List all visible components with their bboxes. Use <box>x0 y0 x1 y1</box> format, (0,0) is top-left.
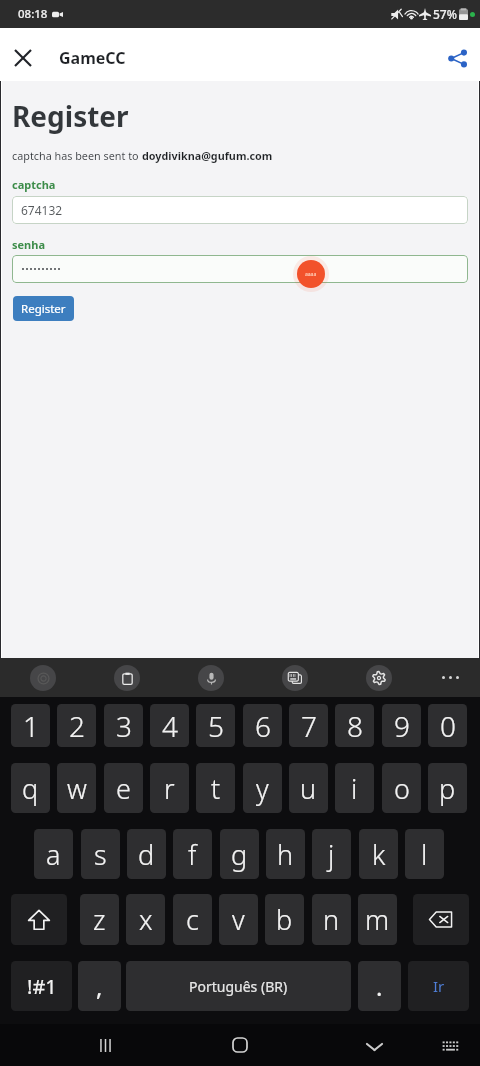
button[interactable]: c <box>173 894 212 945</box>
button[interactable]: d <box>127 829 166 879</box>
button[interactable]: 8 <box>335 704 374 747</box>
button[interactable]: l <box>405 829 444 879</box>
button[interactable]: Hide keyboard <box>353 1024 395 1066</box>
staticText: u <box>300 770 317 807</box>
staticText: 674132 <box>21 202 63 218</box>
staticText: m <box>365 901 390 938</box>
button[interactable]: t <box>196 763 235 813</box>
staticText: senha <box>12 237 45 252</box>
button[interactable]: a <box>34 829 73 879</box>
button[interactable]: Voice input <box>190 658 232 697</box>
button[interactable]: i <box>335 763 374 813</box>
button[interactable]: p <box>428 763 467 813</box>
staticText: 6 <box>255 707 271 745</box>
staticText: 1 <box>23 707 39 745</box>
staticText: h <box>277 836 294 873</box>
staticText: . <box>376 970 383 1003</box>
button[interactable]: z <box>80 894 119 945</box>
button[interactable]: j <box>312 829 351 879</box>
button[interactable]: h <box>266 829 305 879</box>
staticText: e <box>116 770 131 807</box>
staticText: aaaa <box>305 271 317 278</box>
button[interactable]: !#1 <box>11 961 72 1011</box>
button[interactable]: 674132 <box>12 196 468 224</box>
staticText: Ir <box>433 976 445 996</box>
button[interactable]: 7 <box>289 704 328 747</box>
staticText: k <box>372 836 386 873</box>
staticText: p <box>439 770 456 807</box>
staticText: y <box>256 770 269 807</box>
button[interactable]: 1 <box>11 704 50 747</box>
button[interactable]: m <box>358 894 397 945</box>
button[interactable]: r <box>150 763 189 813</box>
button[interactable]: Português (BR) <box>126 961 351 1011</box>
staticText: t <box>211 770 221 807</box>
staticText: Register <box>21 301 66 317</box>
button[interactable]: 5 <box>196 704 235 747</box>
button[interactable]: Close <box>0 35 46 81</box>
button[interactable]: 2 <box>57 704 96 747</box>
button[interactable]: k <box>359 829 398 879</box>
button[interactable]: Register <box>13 296 74 321</box>
staticText: 5 <box>208 707 224 745</box>
staticText: , <box>96 970 103 1003</box>
staticText: q <box>22 770 39 807</box>
staticText: 8 <box>347 707 363 745</box>
button[interactable]: Clipboard <box>106 658 148 697</box>
button[interactable]: More options <box>429 658 471 697</box>
button[interactable] <box>12 255 468 283</box>
button[interactable]: g <box>220 829 259 879</box>
button[interactable]: . <box>358 961 401 1011</box>
button[interactable]: x <box>126 894 165 945</box>
staticText: captcha <box>12 177 56 192</box>
button[interactable]: Share <box>434 35 480 81</box>
button[interactable]: s <box>81 829 120 879</box>
staticText: o <box>394 770 410 807</box>
button[interactable]: n <box>312 894 351 945</box>
button[interactable]: o <box>382 763 421 813</box>
button[interactable]: f <box>173 829 212 879</box>
button[interactable]: v <box>219 894 258 945</box>
button[interactable]: Samsung keyboard <box>22 658 64 697</box>
button[interactable]: y <box>243 763 282 813</box>
staticText: s <box>94 836 107 873</box>
button[interactable]: 3 <box>104 704 143 747</box>
button[interactable]: Shift <box>11 894 67 945</box>
staticText: 4 <box>162 707 178 745</box>
staticText: i <box>351 770 358 807</box>
staticText: r <box>164 770 175 807</box>
staticText: j <box>328 836 335 873</box>
staticText: captcha has been sent to <box>12 148 142 163</box>
staticText: g <box>231 836 248 873</box>
staticText: Português (BR) <box>189 977 288 996</box>
staticText: a <box>46 836 61 873</box>
button[interactable]: Home <box>219 1024 261 1066</box>
button[interactable]: q <box>11 763 50 813</box>
button[interactable]: u <box>289 763 328 813</box>
button[interactable]: 0 <box>428 704 467 747</box>
staticText: l <box>421 836 428 873</box>
button[interactable]: 9 <box>382 704 421 747</box>
staticText: !#1 <box>27 973 57 1000</box>
button[interactable]: Settings <box>358 658 400 697</box>
button[interactable]: Split keyboard <box>274 658 316 697</box>
button[interactable]: Backspace <box>413 894 469 945</box>
button[interactable]: Ir <box>408 961 469 1011</box>
staticText: v <box>232 901 245 938</box>
staticText: 9 <box>394 707 410 745</box>
button[interactable]: , <box>78 961 121 1011</box>
button[interactable]: Recents <box>84 1024 126 1066</box>
staticText: x <box>139 901 153 938</box>
button[interactable]: e <box>104 763 143 813</box>
button[interactable]: b <box>265 894 304 945</box>
staticText: n <box>323 901 340 938</box>
button[interactable]: Change keyboard <box>429 1024 471 1066</box>
staticText: 0 <box>440 707 456 745</box>
button[interactable]: 4 <box>150 704 189 747</box>
staticText: b <box>276 901 293 938</box>
staticText: 2 <box>69 707 85 745</box>
staticText: c <box>186 901 199 938</box>
button[interactable]: 6 <box>243 704 282 747</box>
staticText: f <box>188 836 197 873</box>
button[interactable]: w <box>57 763 96 813</box>
